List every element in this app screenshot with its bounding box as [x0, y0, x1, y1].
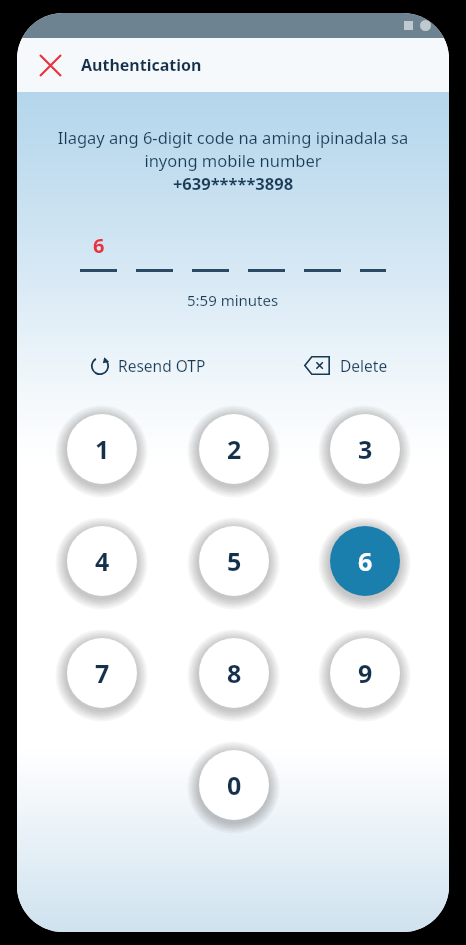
- button[interactable]: 7: [67, 638, 137, 708]
- button[interactable]: 3: [330, 414, 400, 484]
- staticText: Delete: [340, 355, 388, 376]
- staticText: 8: [227, 656, 242, 690]
- staticText: 2: [227, 432, 242, 466]
- button[interactable]: 2: [199, 414, 269, 484]
- staticText: Ilagay ang 6-digit code na aming ipinada…: [43, 126, 423, 195]
- staticText: 0: [227, 768, 242, 802]
- staticText: Resend OTP: [118, 355, 206, 376]
- button[interactable]: 6: [330, 526, 400, 596]
- button[interactable]: 9: [330, 638, 400, 708]
- staticText: 4: [95, 544, 110, 578]
- staticText: 6: [93, 232, 105, 259]
- button[interactable]: Delete: [304, 355, 388, 376]
- button[interactable]: 4: [67, 526, 137, 596]
- staticText: 5: [227, 544, 242, 578]
- button[interactable]: 0: [199, 750, 269, 820]
- staticText: 9: [358, 656, 373, 690]
- button[interactable]: 8: [199, 638, 269, 708]
- button[interactable]: Close: [28, 43, 72, 87]
- button[interactable]: Resend OTP: [90, 355, 206, 376]
- staticText: Authentication: [81, 54, 202, 76]
- staticText: 6: [358, 544, 373, 578]
- staticText: 7: [95, 656, 110, 690]
- button[interactable]: 1: [67, 414, 137, 484]
- button[interactable]: 5: [199, 526, 269, 596]
- staticText: 1: [95, 432, 110, 466]
- staticText: 5:59 minutes: [187, 290, 279, 310]
- staticText: 3: [358, 432, 373, 466]
